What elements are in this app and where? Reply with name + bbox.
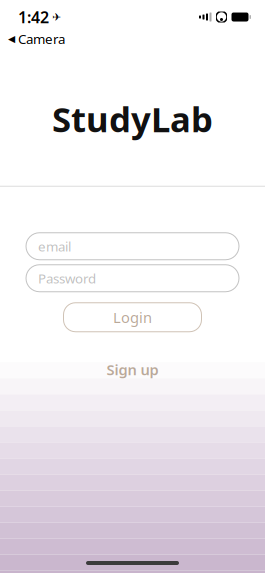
staticText: Password: [38, 269, 96, 287]
staticText: 1:42: [18, 6, 49, 28]
staticText: Camera: [18, 30, 65, 48]
button[interactable]: ◀: [0, 28, 65, 50]
staticText: ◀: [8, 34, 15, 44]
staticText: Sign up: [106, 360, 158, 379]
button[interactable]: Sign up: [96, 356, 168, 383]
staticText: StudyLab: [52, 96, 213, 142]
staticText: email: [38, 237, 71, 255]
staticText: ✈: [52, 11, 61, 23]
staticText: Login: [113, 307, 152, 327]
button[interactable]: Login: [63, 303, 201, 332]
